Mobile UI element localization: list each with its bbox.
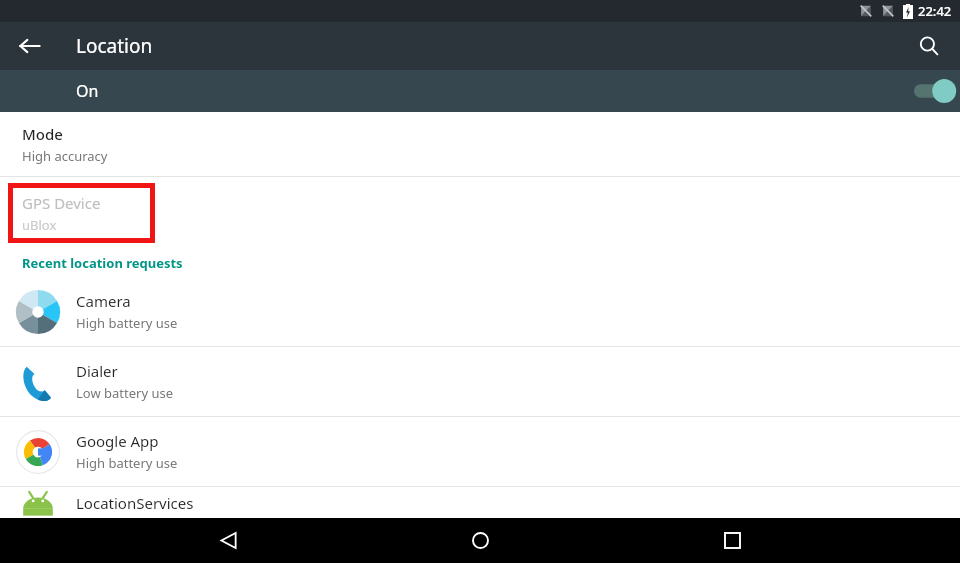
button[interactable]: Home xyxy=(456,518,504,563)
button[interactable]: Search xyxy=(908,25,950,67)
staticText: Location xyxy=(76,33,153,59)
staticText: High battery use xyxy=(76,314,178,332)
staticText: Dialer xyxy=(76,361,118,381)
staticText: Camera xyxy=(76,291,131,311)
button[interactable]: Recent apps xyxy=(708,518,756,563)
staticText: GPS Device xyxy=(22,193,101,213)
staticText: 22:42 xyxy=(918,2,952,20)
staticText: Recent location requests xyxy=(22,254,183,272)
staticText: uBlox xyxy=(22,216,57,234)
staticText: High accuracy xyxy=(22,147,108,165)
staticText: Low battery use xyxy=(76,384,173,402)
button[interactable]: On xyxy=(0,70,960,112)
button[interactable]: Camera xyxy=(0,277,960,346)
button[interactable]: Back xyxy=(204,518,252,563)
button[interactable]: Google App xyxy=(0,417,960,486)
button[interactable]: Mode xyxy=(0,112,960,176)
staticText: High battery use xyxy=(76,454,178,472)
staticText: LocationServices xyxy=(76,493,194,513)
staticText: Mode xyxy=(22,124,63,144)
staticText: On xyxy=(76,80,99,102)
staticText: Google App xyxy=(76,431,159,451)
button[interactable]: Dialer xyxy=(0,347,960,416)
button[interactable]: LocationServices xyxy=(0,487,960,518)
button[interactable]: Back xyxy=(10,26,50,66)
